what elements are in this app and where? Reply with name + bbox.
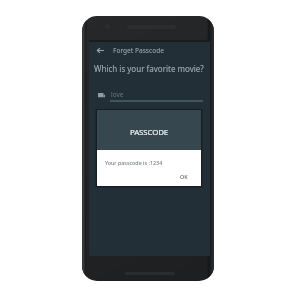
- button[interactable]: Back: [89, 42, 210, 56]
- button[interactable]: OK: [180, 173, 188, 180]
- staticText: love: [111, 90, 124, 99]
- staticText: Forget Passcode: [113, 46, 164, 55]
- staticText: Which is your favorite movie?: [94, 63, 204, 74]
- button[interactable]: Back: [96, 46, 105, 55]
- staticText: Your passcode is :1234: [105, 159, 163, 166]
- staticText: OK: [180, 173, 188, 180]
- staticText: PASSCODE: [130, 127, 169, 138]
